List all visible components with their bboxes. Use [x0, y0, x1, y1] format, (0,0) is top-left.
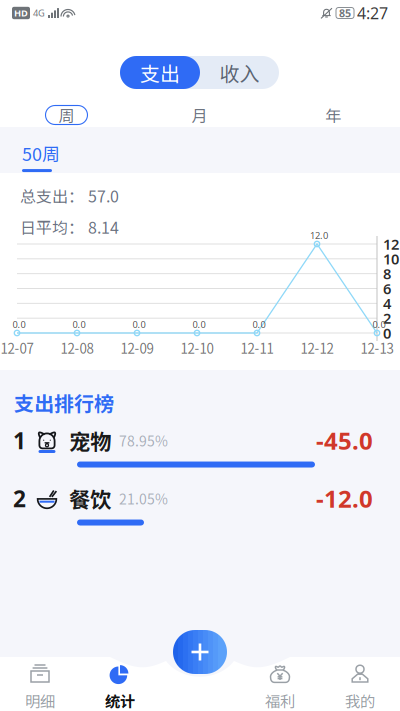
staticText: 1 — [13, 425, 26, 455]
staticText: 4:27 — [357, 2, 388, 24]
staticText: 6 — [383, 279, 391, 298]
staticText: 85 — [339, 6, 351, 20]
staticText: -12.0 — [316, 483, 373, 514]
staticText: 12-10 — [180, 338, 213, 358]
staticText: 0.0 — [132, 318, 145, 331]
button[interactable]: 收入 — [200, 56, 279, 89]
staticText: 统计 — [105, 689, 135, 711]
staticText: 12 — [383, 234, 399, 254]
staticText: 10 — [383, 249, 399, 269]
button[interactable]: 福利 — [240, 664, 320, 710]
button[interactable]: 周 — [45, 105, 87, 124]
staticText: 78.95% — [119, 430, 168, 451]
button[interactable]: 统计 — [80, 664, 160, 710]
staticText: 4 — [383, 294, 391, 313]
staticText: 福利 — [265, 689, 295, 711]
staticText: 2 — [383, 308, 391, 328]
staticText: 月 — [191, 103, 207, 127]
staticText: 收入 — [219, 58, 259, 87]
staticText: 12-09 — [120, 338, 153, 358]
staticText: 12.0 — [310, 229, 328, 242]
staticText: 12-11 — [240, 338, 273, 358]
staticText: 总支出： 57.0 — [20, 184, 119, 207]
staticText: 支出排行榜 — [14, 388, 114, 417]
staticText: 50周 — [22, 140, 60, 166]
button[interactable]: 年 — [266, 105, 400, 124]
staticText: 周 — [58, 103, 74, 127]
staticText: 明细 — [25, 689, 55, 711]
staticText: 8 — [383, 264, 391, 283]
staticText: 支出 — [140, 58, 180, 87]
staticText: 0.0 — [192, 318, 205, 331]
button[interactable]: 明细 — [0, 664, 80, 710]
button[interactable]: 支出 — [120, 56, 200, 89]
staticText: 2 — [13, 483, 26, 513]
staticText: 12-13 — [360, 338, 393, 358]
staticText: HD — [14, 7, 28, 19]
staticText: 12-12 — [300, 338, 333, 358]
staticText: 年 — [325, 103, 341, 127]
button[interactable]: 我的 — [320, 664, 400, 710]
staticText: 餐饮 — [69, 483, 111, 514]
button[interactable]: 2 — [13, 484, 373, 528]
staticText: 0.0 — [12, 318, 25, 331]
button[interactable]: Add — [173, 630, 227, 674]
staticText: 宠物 — [69, 425, 111, 456]
button[interactable]: 1 — [13, 426, 373, 470]
staticText: 0 — [383, 323, 391, 343]
staticText: 0.0 — [372, 318, 385, 331]
staticText: 21.05% — [119, 488, 168, 509]
staticText: 4G — [33, 7, 45, 19]
staticText: 日平均： 8.14 — [20, 215, 119, 238]
button[interactable]: 月 — [133, 105, 266, 124]
staticText: -45.0 — [316, 425, 373, 456]
staticText: 0.0 — [252, 318, 265, 331]
staticText: 12-07 — [0, 338, 33, 358]
staticText: 12-08 — [60, 338, 93, 358]
staticText: 我的 — [345, 689, 375, 711]
staticText: 0.0 — [72, 318, 85, 331]
